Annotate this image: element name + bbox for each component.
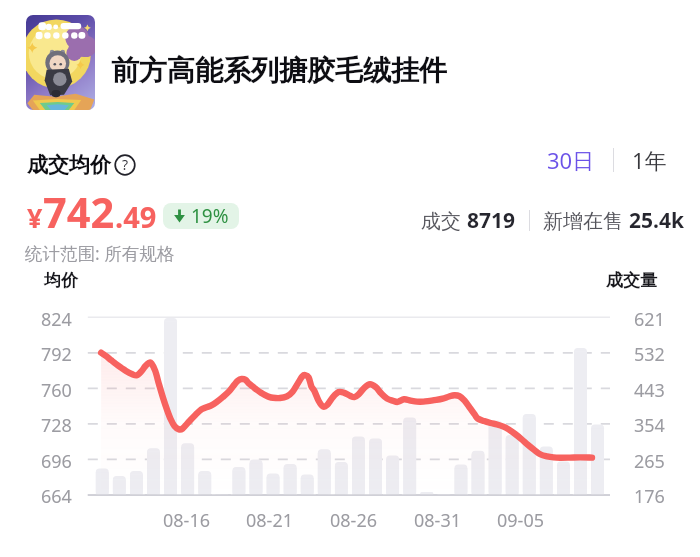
staticText: 08-31 <box>414 508 461 533</box>
staticText: 728 <box>41 413 72 438</box>
staticText: ¥ <box>27 199 43 236</box>
staticText: 08-26 <box>330 508 377 533</box>
staticText: 30日 <box>547 145 595 175</box>
staticText: 08-21 <box>246 508 293 533</box>
staticText: 792 <box>41 342 72 367</box>
staticText: 532 <box>634 342 665 367</box>
staticText: 664 <box>41 484 72 509</box>
staticText: 前方高能系列搪胶毛绒挂件 <box>111 53 447 88</box>
staticText: 443 <box>634 378 665 403</box>
staticText: ? <box>122 155 129 174</box>
staticText: .49 <box>115 197 157 236</box>
button[interactable]: 商品图片 <box>26 15 95 110</box>
staticText: 均价 <box>44 270 78 291</box>
button[interactable]: 30日 <box>542 140 600 180</box>
staticText: 成交 <box>421 207 467 234</box>
button[interactable]: 说明 <box>114 154 136 176</box>
staticText: 8719 <box>467 206 516 235</box>
staticText: 742 <box>43 184 115 241</box>
staticText: 1年 <box>632 145 667 175</box>
staticText: 新增在售 <box>543 207 629 234</box>
staticText: 25.4k <box>629 206 684 235</box>
staticText: 08-16 <box>163 508 210 533</box>
staticText: 成交均价 <box>27 152 111 178</box>
staticText: 265 <box>634 449 665 474</box>
staticText: 621 <box>634 307 665 332</box>
staticText: 354 <box>634 413 665 438</box>
staticText: 统计范围: 所有规格 <box>25 241 175 265</box>
button[interactable]: 1年 <box>627 140 672 180</box>
staticText: 824 <box>41 307 72 332</box>
staticText: 760 <box>41 378 72 403</box>
staticText: 176 <box>634 484 665 509</box>
staticText: 09-05 <box>497 508 544 533</box>
staticText: 696 <box>41 449 72 474</box>
staticText: 成交量 <box>606 270 657 291</box>
staticText: 19% <box>191 203 229 229</box>
button[interactable]: 19% <box>163 203 239 229</box>
